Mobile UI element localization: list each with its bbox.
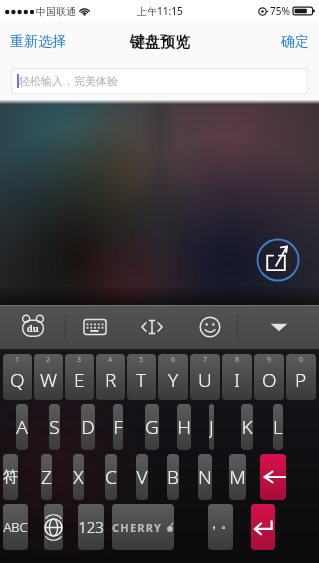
button[interactable]: Share: [256, 238, 300, 282]
button[interactable]: 符: [3, 454, 18, 500]
staticText: 5: [139, 355, 144, 365]
staticText: 2: [46, 355, 51, 365]
button[interactable]: C: [105, 454, 117, 500]
staticText: ，: [208, 516, 220, 531]
staticText: G: [145, 414, 159, 440]
staticText: 中国联通: [36, 5, 76, 18]
staticText: E: [74, 367, 85, 393]
staticText: W: [40, 367, 58, 393]
button[interactable]: V: [136, 454, 148, 500]
staticText: K: [241, 414, 253, 440]
button[interactable]: 123: [78, 504, 104, 550]
staticText: 6: [171, 355, 176, 365]
button[interactable]: M: [229, 454, 246, 500]
button[interactable]: Move cursor: [123, 305, 180, 349]
button[interactable]: 8: [222, 354, 252, 400]
button[interactable]: S: [49, 404, 60, 450]
button[interactable]: 3: [65, 354, 94, 400]
staticText: du: [27, 322, 39, 334]
staticText: CHERRY: [112, 520, 163, 535]
staticText: 上午11:15: [137, 4, 183, 18]
staticText: 符: [3, 468, 18, 487]
button[interactable]: F: [113, 404, 123, 450]
staticText: R: [105, 367, 117, 393]
staticText: 75%: [270, 4, 290, 18]
button[interactable]: G: [145, 404, 159, 450]
staticText: 轻松输入，完美体验: [19, 74, 118, 88]
staticText: S: [49, 414, 60, 440]
button[interactable]: [44, 504, 63, 550]
staticText: Y: [168, 367, 179, 393]
button[interactable]: 重新选择: [0, 25, 76, 59]
button[interactable]: 0: [286, 354, 316, 400]
staticText: 9: [267, 355, 272, 365]
button[interactable]: K: [241, 404, 253, 450]
button[interactable]: [251, 504, 275, 550]
button[interactable]: 9: [254, 354, 284, 400]
button[interactable]: 轻松输入，完美体验: [11, 68, 308, 94]
staticText: P: [295, 367, 307, 393]
staticText: L: [273, 414, 283, 440]
button[interactable]: L: [273, 404, 283, 450]
staticText: 1: [15, 355, 20, 365]
button[interactable]: ABC: [3, 504, 28, 550]
staticText: 8: [235, 355, 240, 365]
button[interactable]: Baidu input: [0, 305, 66, 349]
staticText: B: [167, 464, 179, 490]
staticText: Q: [10, 367, 25, 393]
other: Change language: [44, 504, 76, 560]
other: Space: [112, 504, 206, 560]
button[interactable]: H: [177, 404, 191, 450]
button[interactable]: D: [81, 404, 95, 450]
staticText: J: [209, 414, 214, 440]
button[interactable]: J: [209, 404, 214, 450]
button[interactable]: 7: [190, 354, 220, 400]
staticText: T: [136, 367, 147, 393]
staticText: H: [177, 414, 191, 440]
staticText: C: [105, 464, 117, 490]
button[interactable]: 5: [127, 354, 156, 400]
staticText: 4: [108, 355, 113, 365]
staticText: D: [81, 414, 95, 440]
staticText: 重新选择: [10, 33, 66, 51]
button[interactable]: 1: [3, 354, 32, 400]
button[interactable]: CHERRY: [112, 504, 174, 550]
button[interactable]: Z: [41, 454, 52, 500]
staticText: ABC: [3, 518, 28, 536]
staticText: O: [262, 367, 277, 393]
staticText: 确定: [281, 33, 309, 51]
staticText: 0: [299, 355, 304, 365]
button[interactable]: A: [16, 404, 28, 450]
staticText: I: [234, 367, 240, 393]
button[interactable]: ，: [208, 504, 233, 550]
button[interactable]: X: [73, 454, 84, 500]
staticText: F: [113, 414, 123, 440]
staticText: 。: [221, 516, 233, 531]
button[interactable]: 4: [96, 354, 125, 400]
other: Enter: [251, 504, 316, 560]
button[interactable]: [260, 454, 286, 500]
button[interactable]: Hide keyboard: [239, 305, 319, 349]
button[interactable]: Emoji: [180, 305, 239, 349]
staticText: X: [73, 464, 84, 490]
button[interactable]: Switch keyboard: [66, 305, 123, 349]
staticText: 键盘预览: [130, 33, 190, 52]
staticText: M: [229, 464, 246, 490]
staticText: 7: [203, 355, 208, 365]
button[interactable]: N: [198, 454, 212, 500]
button[interactable]: B: [167, 454, 179, 500]
staticText: 3: [77, 355, 82, 365]
button[interactable]: 2: [34, 354, 63, 400]
staticText: A: [16, 414, 28, 440]
staticText: V: [136, 464, 148, 490]
staticText: Z: [41, 464, 52, 490]
button[interactable]: 6: [158, 354, 188, 400]
other: Backspace: [260, 454, 316, 500]
button[interactable]: 确定: [271, 25, 319, 59]
staticText: N: [198, 464, 212, 490]
staticText: U: [198, 367, 212, 393]
staticText: 123: [78, 517, 104, 537]
